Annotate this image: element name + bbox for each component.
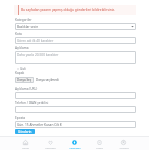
button[interactable]: Gönderin [15,129,35,134]
staticText: Gün. 15 Ahmetler Kuşan Cilt 8 [17,123,62,126]
staticText: Favorites [45,146,56,149]
staticText: Messages [69,146,81,149]
button[interactable]: Dosya Seç [15,77,34,83]
button[interactable]: Messages [65,138,84,149]
staticText: Home [22,146,29,149]
staticText: Daha yazıla 20-500 karakter [17,53,59,57]
button[interactable]: Notes [90,138,109,149]
staticText: Dosya Seç [17,78,32,82]
button[interactable]: Bu sayfadan yazarın yapmış olduğu gönder… [14,5,136,15]
staticText: Eposta [15,116,26,120]
button[interactable] [15,92,136,99]
staticText: Dosya seçilmedi [36,78,59,82]
staticText: Notes [96,146,103,149]
staticText: Kota [15,32,22,36]
button[interactable]: Account [114,138,133,149]
button[interactable]: Favorites [41,138,60,149]
staticText: Kapak [15,71,25,75]
staticText: Açıklama [15,46,29,50]
button[interactable]: Home [16,138,35,149]
staticText: Gizli [20,67,26,71]
button[interactable] [15,106,136,113]
staticText: Bu sayfadan yazarın yapmış olduğu gönder… [21,8,115,12]
staticText: Başlıklar seçin [17,25,39,28]
staticText: Görev adı ilk 40 karakter [17,39,54,42]
button[interactable]: Görev adı ilk 40 karakter [15,37,136,44]
button[interactable]: Gizli [17,67,26,71]
staticText: Gönderin [18,130,32,134]
button[interactable]: Başlıklar seçin [15,23,136,30]
button[interactable]: Gün. 15 Ahmetler Kuşan Cilt 8 [15,121,136,128]
staticText: Telefon / IBAN yetkilisi [15,101,49,105]
button[interactable]: Daha yazıla 20-500 karakter [15,51,136,64]
staticText: Kategoriler [15,18,32,22]
staticText: Account [119,146,129,149]
staticText: Açıklama (URL) [15,87,38,91]
